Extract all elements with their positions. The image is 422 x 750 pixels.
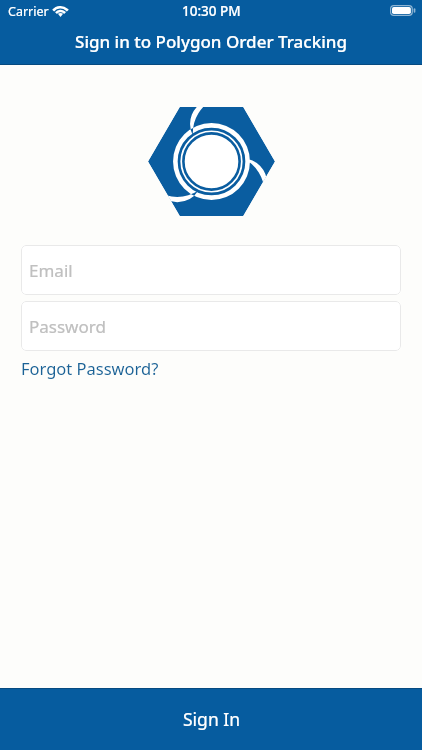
staticText: Email: [29, 259, 73, 282]
staticText: Carrier: [8, 3, 49, 20]
staticText: Sign in to Polygon Order Tracking: [0, 30, 422, 53]
staticText: Sign In: [183, 707, 240, 731]
other: Wi-Fi: [53, 6, 68, 17]
other: Battery full: [390, 5, 416, 16]
button[interactable]: Sign In: [0, 688, 422, 750]
staticText: 10:30 PM: [182, 2, 241, 20]
staticText: Password: [29, 315, 106, 338]
button[interactable]: Email: [21, 245, 401, 295]
staticText: Forgot Password?: [21, 357, 159, 379]
button[interactable]: Forgot Password?: [21, 355, 159, 381]
button[interactable]: Password: [21, 301, 401, 351]
